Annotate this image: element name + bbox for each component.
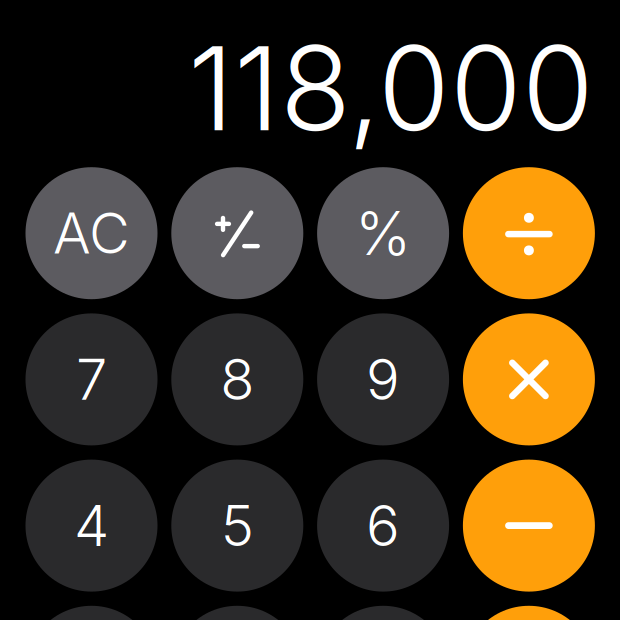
button[interactable]: %	[317, 167, 449, 299]
button[interactable]: 3	[317, 606, 449, 620]
button[interactable]: Minus	[463, 460, 595, 592]
staticText: AC	[53, 199, 130, 267]
staticText: 118,000	[188, 18, 594, 158]
button[interactable]: Multiply	[463, 313, 595, 445]
staticText: %	[355, 197, 411, 269]
button[interactable]: 2	[171, 606, 303, 620]
staticText: 9	[366, 345, 400, 413]
staticText: 6	[366, 492, 400, 559]
button[interactable]: Plus minus	[171, 167, 303, 299]
button[interactable]: Divide	[463, 167, 595, 299]
button[interactable]: 8	[171, 313, 303, 445]
button[interactable]: 5	[171, 460, 303, 592]
button[interactable]: 4	[25, 460, 157, 592]
staticText: 4	[74, 492, 109, 559]
button[interactable]: 9	[317, 313, 449, 445]
button[interactable]: 1	[25, 606, 157, 620]
button[interactable]: Plus	[463, 606, 595, 620]
button[interactable]: AC	[25, 167, 157, 299]
staticText: 7	[76, 345, 107, 413]
staticText: 8	[220, 345, 254, 413]
button[interactable]: 7	[25, 313, 157, 445]
staticText: 5	[221, 492, 254, 559]
button[interactable]: 6	[317, 460, 449, 592]
